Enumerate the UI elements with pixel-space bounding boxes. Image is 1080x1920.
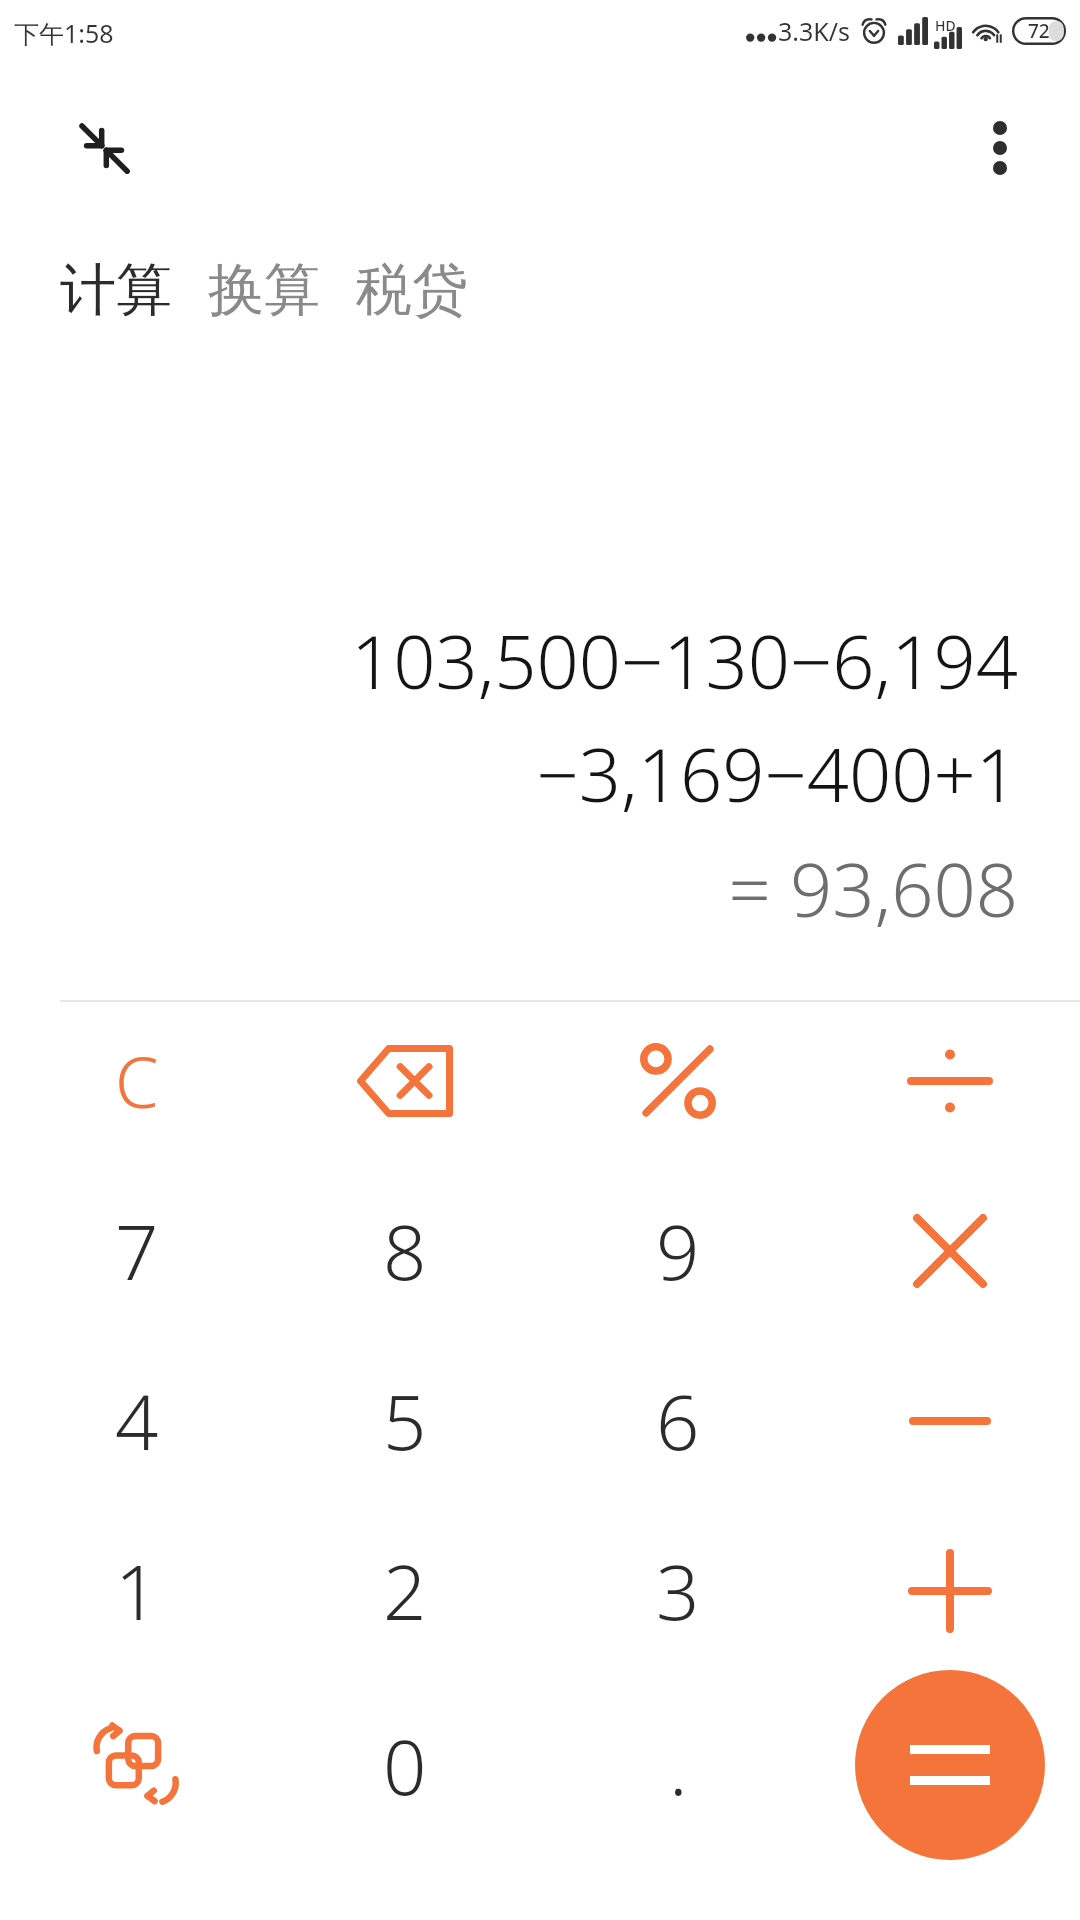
button[interactable]: Minus: [825, 1338, 1075, 1503]
button[interactable]: .: [553, 1683, 803, 1848]
button[interactable]: 8: [280, 1168, 530, 1333]
button[interactable]: C: [12, 998, 262, 1163]
button[interactable]: Unit conversion: [12, 1683, 262, 1848]
staticText: .: [669, 1714, 688, 1818]
staticText: 5: [383, 1369, 427, 1473]
button[interactable]: 9: [553, 1168, 803, 1333]
staticText: C: [115, 1033, 159, 1128]
button[interactable]: 计算: [58, 249, 174, 332]
button[interactable]: 7: [12, 1168, 262, 1333]
staticText: HD: [935, 16, 956, 35]
staticText: 4: [115, 1369, 159, 1473]
button[interactable]: 0: [280, 1683, 530, 1848]
button[interactable]: 3: [553, 1508, 803, 1673]
staticText: 换算: [208, 255, 320, 326]
staticText: 8: [383, 1199, 427, 1303]
button[interactable]: Percent: [553, 998, 803, 1163]
staticText: 2: [383, 1539, 427, 1643]
staticText: 税贷: [356, 255, 468, 326]
staticText: 下午1:58: [14, 16, 114, 50]
button[interactable]: 2: [280, 1508, 530, 1673]
button[interactable]: Collapse: [58, 102, 150, 194]
staticText: 9: [656, 1199, 700, 1303]
button[interactable]: 换算: [206, 249, 322, 332]
button[interactable]: 4: [12, 1338, 262, 1503]
staticText: 3: [656, 1539, 700, 1643]
staticText: = 93,608: [728, 838, 1018, 939]
staticText: −3,169−400+1: [536, 723, 1018, 824]
button[interactable]: 6: [553, 1338, 803, 1503]
staticText: 72: [1028, 18, 1050, 44]
staticText: 7: [115, 1199, 159, 1303]
button[interactable]: Equals: [855, 1670, 1045, 1860]
staticText: 6: [656, 1369, 700, 1473]
button[interactable]: More options: [954, 102, 1046, 194]
staticText: 0: [383, 1714, 427, 1818]
button[interactable]: 5: [280, 1338, 530, 1503]
button[interactable]: Plus: [825, 1508, 1075, 1673]
button[interactable]: 1: [12, 1508, 262, 1673]
staticText: 1: [115, 1539, 159, 1643]
staticText: 3.3K/s: [778, 14, 851, 48]
staticText: 103,500−130−6,194: [350, 610, 1018, 711]
button[interactable]: 税贷: [354, 249, 470, 332]
button[interactable]: Backspace: [280, 998, 530, 1163]
button[interactable]: Divide: [825, 998, 1075, 1163]
staticText: 计算: [60, 255, 172, 326]
button[interactable]: Multiply: [825, 1168, 1075, 1333]
